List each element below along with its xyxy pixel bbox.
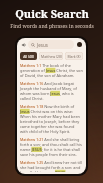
button[interactable]: Mark (8): [65, 52, 83, 60]
staticText: Matthew 1:16 And Jacob begat Joseph the …: [20, 81, 83, 101]
button[interactable]: Matthew 1:1 The book of the generation o…: [20, 62, 83, 79]
button[interactable]: Jesus: [28, 40, 74, 49]
staticText: Matthew 1:18 Now the birth of Jesus Chri…: [20, 104, 83, 134]
button[interactable]: Matthew 1:16 And Jacob begat Joseph the …: [20, 80, 83, 102]
staticText: Find words and phrases in seconds: [10, 23, 94, 30]
button[interactable]: Settings: [76, 41, 83, 48]
button[interactable]: Matthew 1:18 Now the birth of Jesus Chri…: [20, 103, 83, 135]
button[interactable]: All (48): [20, 52, 37, 60]
staticText: Matthew 1:1 The book of the generation o…: [20, 63, 83, 78]
staticText: Matthew 1:25 And knew her not till she h…: [20, 160, 83, 172]
button[interactable]: Back: [20, 41, 27, 48]
staticText: All (48): [23, 54, 34, 59]
staticText: Matthew 1:21 And she shall bring forth a…: [20, 137, 83, 157]
button[interactable]: Matthew 1:25 And knew her not till she h…: [20, 159, 83, 173]
button[interactable]: Matthew 1:21 And she shall bring forth a…: [20, 136, 83, 158]
staticText: Jesus: [37, 42, 48, 48]
staticText: Matthew (28): [41, 54, 62, 59]
staticText: Mark (8): [67, 54, 81, 59]
staticText: Quick Search: [15, 6, 89, 21]
button[interactable]: Matthew (28): [39, 52, 63, 60]
